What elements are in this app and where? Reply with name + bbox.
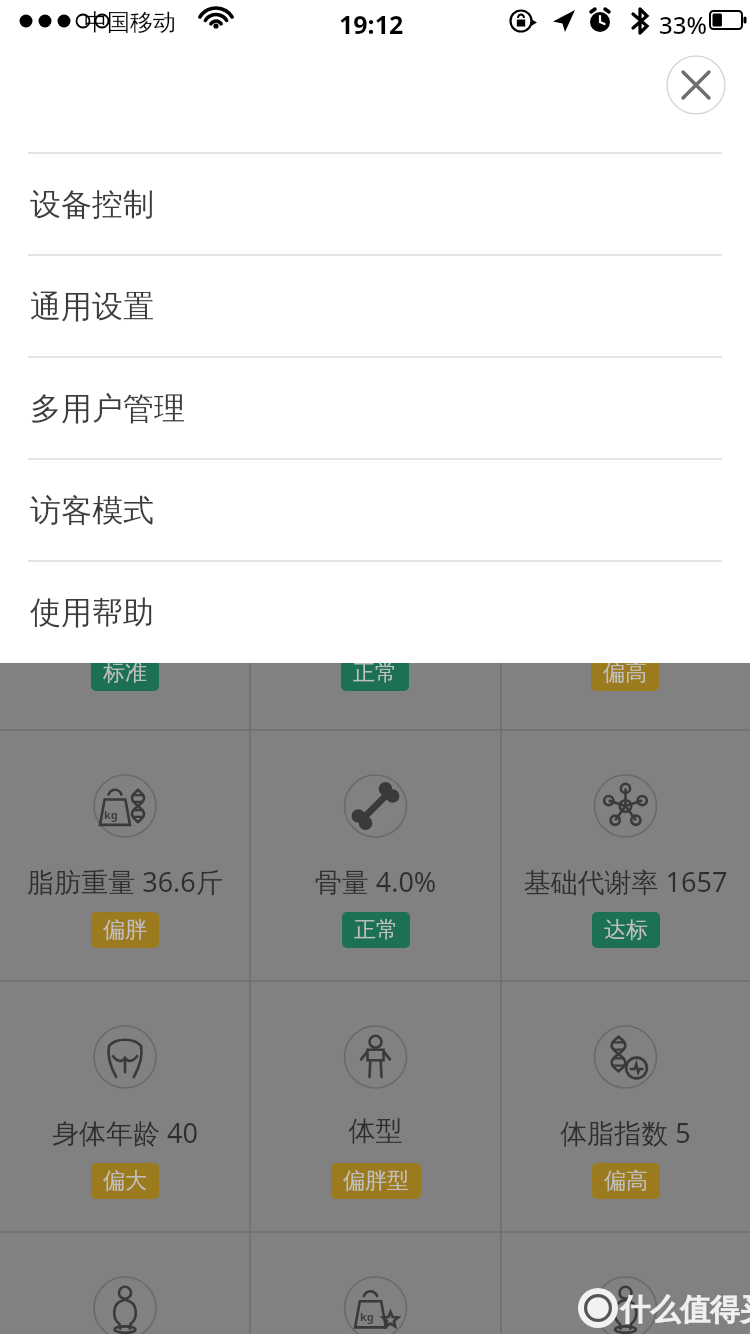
button[interactable]: 体型 (250, 981, 501, 1231)
staticText: 体型 (250, 1114, 501, 1148)
staticText: 标准 (103, 659, 147, 687)
button[interactable]: Close (666, 55, 726, 115)
staticText: 正常 (353, 659, 397, 687)
button[interactable]: 身体年龄 40 (0, 981, 250, 1231)
button[interactable]: 正常 (250, 663, 500, 730)
staticText: 身体年龄 40 (0, 1114, 250, 1151)
staticText: kg (104, 807, 118, 822)
staticText: 33% (659, 8, 707, 41)
staticText: 什么值得买 (620, 1291, 750, 1329)
staticText: 达标 (604, 916, 648, 944)
staticText: kg (360, 1309, 374, 1324)
button[interactable]: 访客模式 (0, 459, 750, 561)
staticText: 使用帮助 (30, 593, 154, 632)
button[interactable] (0, 1232, 250, 1334)
staticText: 19:12 (339, 7, 404, 41)
button[interactable]: 使用帮助 (0, 561, 750, 663)
staticText: 偏大 (103, 1167, 147, 1195)
staticText: 偏胖型 (343, 1167, 409, 1195)
button[interactable]: 标准 (0, 663, 250, 730)
button[interactable]: 设备控制 (0, 153, 750, 255)
button[interactable]: 通用设置 (0, 255, 750, 357)
staticText: 通用设置 (30, 287, 154, 326)
staticText: 访客模式 (30, 491, 154, 530)
staticText: 骨量 4.0% (250, 863, 501, 900)
staticText: 偏高 (603, 659, 647, 687)
staticText: 偏胖 (103, 916, 147, 944)
button[interactable]: 多用户管理 (0, 357, 750, 459)
staticText: 偏高 (604, 1167, 648, 1195)
button[interactable]: kg (250, 1232, 501, 1334)
staticText: 脂肪重量 36.6斤 (0, 863, 250, 900)
button[interactable]: 体脂指数 5 (501, 981, 750, 1231)
staticText: 体脂指数 5 (501, 1114, 750, 1151)
button[interactable]: 偏高 (500, 663, 750, 730)
staticText: 正常 (354, 916, 398, 944)
staticText: 多用户管理 (30, 389, 185, 428)
button[interactable] (501, 1232, 750, 1334)
button[interactable]: kg (0, 730, 250, 980)
button[interactable]: 骨量 4.0% (250, 730, 501, 980)
staticText: 基础代谢率 1657 (501, 863, 750, 900)
button[interactable]: 基础代谢率 1657 (501, 730, 750, 980)
staticText: 中国移动 (84, 8, 176, 37)
staticText: 设备控制 (30, 185, 154, 224)
